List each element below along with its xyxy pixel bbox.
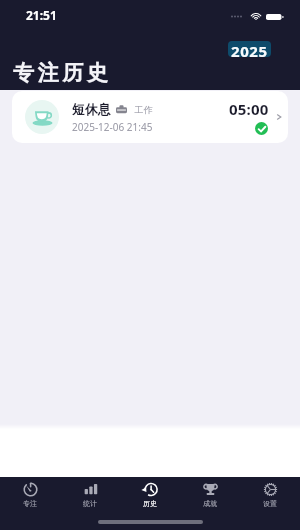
button[interactable]: 历史 (120, 477, 180, 513)
button[interactable]: 统计 (60, 477, 120, 513)
staticText: 短休息 (72, 101, 111, 117)
button[interactable]: 2025 (228, 41, 271, 57)
button[interactable]: 设置 (240, 477, 300, 513)
staticText: 历史 (143, 499, 157, 508)
staticText: 21:51 (26, 7, 57, 23)
button[interactable]: 专注 (0, 477, 60, 513)
staticText: 2025 (231, 41, 268, 57)
staticText: 工作 (134, 104, 153, 115)
staticText: 05:00 (229, 99, 269, 119)
staticText: 成就 (203, 499, 217, 508)
staticText: 专注 (23, 499, 37, 508)
staticText: 专注历史 (13, 60, 112, 86)
button[interactable]: 短休息 (12, 91, 288, 143)
staticText: 设置 (263, 499, 277, 508)
button[interactable]: 成就 (180, 477, 240, 513)
other: Details (276, 112, 282, 122)
staticText: 2025-12-06 21:45 (72, 120, 153, 134)
staticText: 统计 (83, 499, 97, 508)
